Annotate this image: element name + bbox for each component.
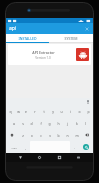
staticText: x <box>31 133 33 138</box>
button[interactable]: ?123 <box>6 141 21 153</box>
staticText: t <box>43 109 45 114</box>
staticText: s <box>22 121 24 126</box>
button[interactable]: s <box>18 117 27 129</box>
staticText: u <box>60 109 63 114</box>
button[interactable]: r <box>30 105 39 117</box>
button[interactable]: f <box>36 117 45 129</box>
button[interactable]: l <box>81 117 90 129</box>
button[interactable]: Recent apps <box>55 153 64 162</box>
button[interactable]: i <box>66 105 75 117</box>
button[interactable]: y <box>48 105 57 117</box>
button[interactable]: Search <box>79 141 93 153</box>
staticText: d <box>30 121 33 126</box>
button[interactable]: h <box>54 117 63 129</box>
staticText: o <box>78 109 81 114</box>
button[interactable]: api <box>6 23 93 34</box>
button[interactable]: o <box>75 105 84 117</box>
staticText: l <box>85 121 86 126</box>
staticText: y <box>52 109 54 114</box>
button[interactable]: t <box>39 105 48 117</box>
staticText: . <box>74 145 75 150</box>
button[interactable]: j <box>63 117 72 129</box>
staticText: f <box>40 121 42 126</box>
staticText: Version 1.0 <box>35 56 51 60</box>
button[interactable]: Keyboard switcher <box>74 153 83 162</box>
button[interactable]: d <box>27 117 36 129</box>
staticText: j <box>67 121 68 126</box>
staticText: h <box>57 121 60 126</box>
button[interactable]: n <box>63 129 72 141</box>
button[interactable]: z <box>18 129 27 141</box>
staticText: SYSTEM <box>64 36 78 41</box>
button[interactable]: k <box>72 117 81 129</box>
button[interactable]: e <box>22 105 30 117</box>
button[interactable]: , <box>21 141 30 153</box>
staticText: API Extractor <box>32 50 55 55</box>
button[interactable]: API Extractor <box>8 44 91 65</box>
button[interactable]: m <box>72 129 81 141</box>
button[interactable]: g <box>45 117 54 129</box>
staticText: b <box>57 133 60 138</box>
button[interactable]: Backspace <box>81 129 93 141</box>
button[interactable]: c <box>36 129 45 141</box>
button[interactable]: p <box>84 105 93 117</box>
staticText: INSTALLED <box>18 36 37 41</box>
staticText: p <box>87 109 90 114</box>
button[interactable]: b <box>54 129 63 141</box>
button[interactable]: Voice input <box>85 99 91 105</box>
button[interactable]: v <box>45 129 54 141</box>
button[interactable]: a <box>9 117 18 129</box>
button[interactable]: u <box>57 105 66 117</box>
staticText: n <box>66 133 69 138</box>
staticText: i <box>70 109 71 114</box>
button[interactable]: Home <box>35 153 44 162</box>
button[interactable]: q <box>6 105 14 117</box>
staticText: k <box>76 121 78 126</box>
staticText: g <box>48 121 51 126</box>
staticText: w <box>17 109 20 114</box>
staticText: a <box>13 121 15 126</box>
other: App icon <box>76 48 89 61</box>
button[interactable]: Shift <box>6 129 18 141</box>
staticText: e <box>25 109 27 114</box>
button[interactable]: Clear search <box>83 25 90 32</box>
staticText: ?123 <box>11 146 17 149</box>
button[interactable]: SYSTEM <box>49 34 93 42</box>
staticText: api <box>9 25 17 32</box>
button[interactable]: w <box>14 105 22 117</box>
staticText: q <box>9 109 12 114</box>
staticText: r <box>34 109 36 114</box>
staticText: c <box>40 133 42 138</box>
button[interactable]: x <box>27 129 36 141</box>
staticText: v <box>49 133 51 138</box>
staticText: z <box>22 133 24 138</box>
button[interactable]: INSTALLED <box>6 34 49 42</box>
button[interactable]: Back <box>16 153 25 162</box>
staticText: , <box>25 145 26 150</box>
staticText: m <box>75 133 79 138</box>
